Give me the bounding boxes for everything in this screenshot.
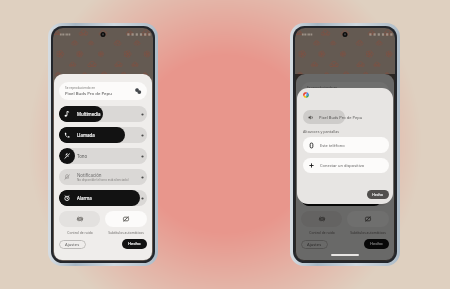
staticText: Hecho (372, 192, 384, 197)
button[interactable]: Control de ruido (301, 211, 342, 227)
staticText: Pixel Buds Pro de Pepu (65, 90, 112, 96)
button[interactable]: Llamada (59, 127, 147, 143)
staticText: Multimedia (319, 111, 343, 117)
staticText: Notificación (77, 172, 102, 178)
staticText: Subtítulos automáticos (108, 230, 144, 234)
staticText: Notificación (319, 172, 344, 178)
button[interactable]: Multimedia (59, 106, 147, 122)
staticText: Pixel Buds Pro de Pepu (307, 90, 354, 96)
staticText: Ajustes (65, 242, 80, 248)
staticText: Se reproduciendo en (65, 86, 96, 90)
button[interactable]: Subtítulos automáticos (105, 211, 147, 227)
button[interactable]: Control de ruido (59, 211, 100, 227)
staticText: Tono (77, 153, 88, 159)
button[interactable]: Se reproduciendo en (301, 82, 389, 100)
button[interactable]: Notificación (59, 169, 147, 185)
staticText: Multimedia (77, 111, 101, 117)
button[interactable]: Ajustes (301, 240, 328, 249)
button[interactable]: Conectar un dispositivo (303, 158, 389, 173)
button[interactable]: Hecho (364, 239, 389, 249)
staticText: Control de ruido (309, 230, 335, 234)
button[interactable]: Hecho (367, 190, 389, 199)
staticText: Se reproduciendo en (307, 86, 338, 90)
button[interactable]: Pixel Buds Pro de Pepu (303, 110, 389, 124)
button[interactable]: Notificación (301, 169, 389, 185)
staticText: Llamada (319, 132, 337, 138)
staticText: Ajustes (307, 242, 322, 248)
button[interactable]: Multimedia (301, 106, 389, 122)
staticText: Subtítulos automáticos (350, 230, 386, 234)
button[interactable]: Alarma (301, 190, 389, 206)
staticText: Este teléfono (320, 143, 345, 148)
staticText: Alarma (77, 195, 92, 201)
button[interactable]: Ajustes (59, 240, 86, 249)
button[interactable]: Hecho (122, 239, 147, 249)
button[interactable]: Llamada (301, 127, 389, 143)
staticText: Conectar un dispositivo (320, 163, 365, 168)
staticText: Control de ruido (67, 230, 93, 234)
staticText: Hecho (128, 241, 141, 247)
staticText: Pixel Buds Pro de Pepu (319, 115, 363, 120)
button[interactable]: Subtítulos automáticos (347, 211, 389, 227)
staticText: Hecho (370, 241, 383, 247)
staticText: Llamada (77, 132, 95, 138)
button[interactable]: Se reproduciendo en (59, 82, 147, 100)
button[interactable]: Tono (301, 148, 389, 164)
button[interactable]: Alarma (59, 190, 147, 206)
staticText: Tono (319, 153, 330, 159)
button[interactable]: Este teléfono (303, 137, 389, 153)
staticText: Altavoces y pantallas (303, 129, 339, 134)
button[interactable]: Tono (59, 148, 147, 164)
staticText: No disponible (el tono está silenciado) (77, 178, 129, 182)
